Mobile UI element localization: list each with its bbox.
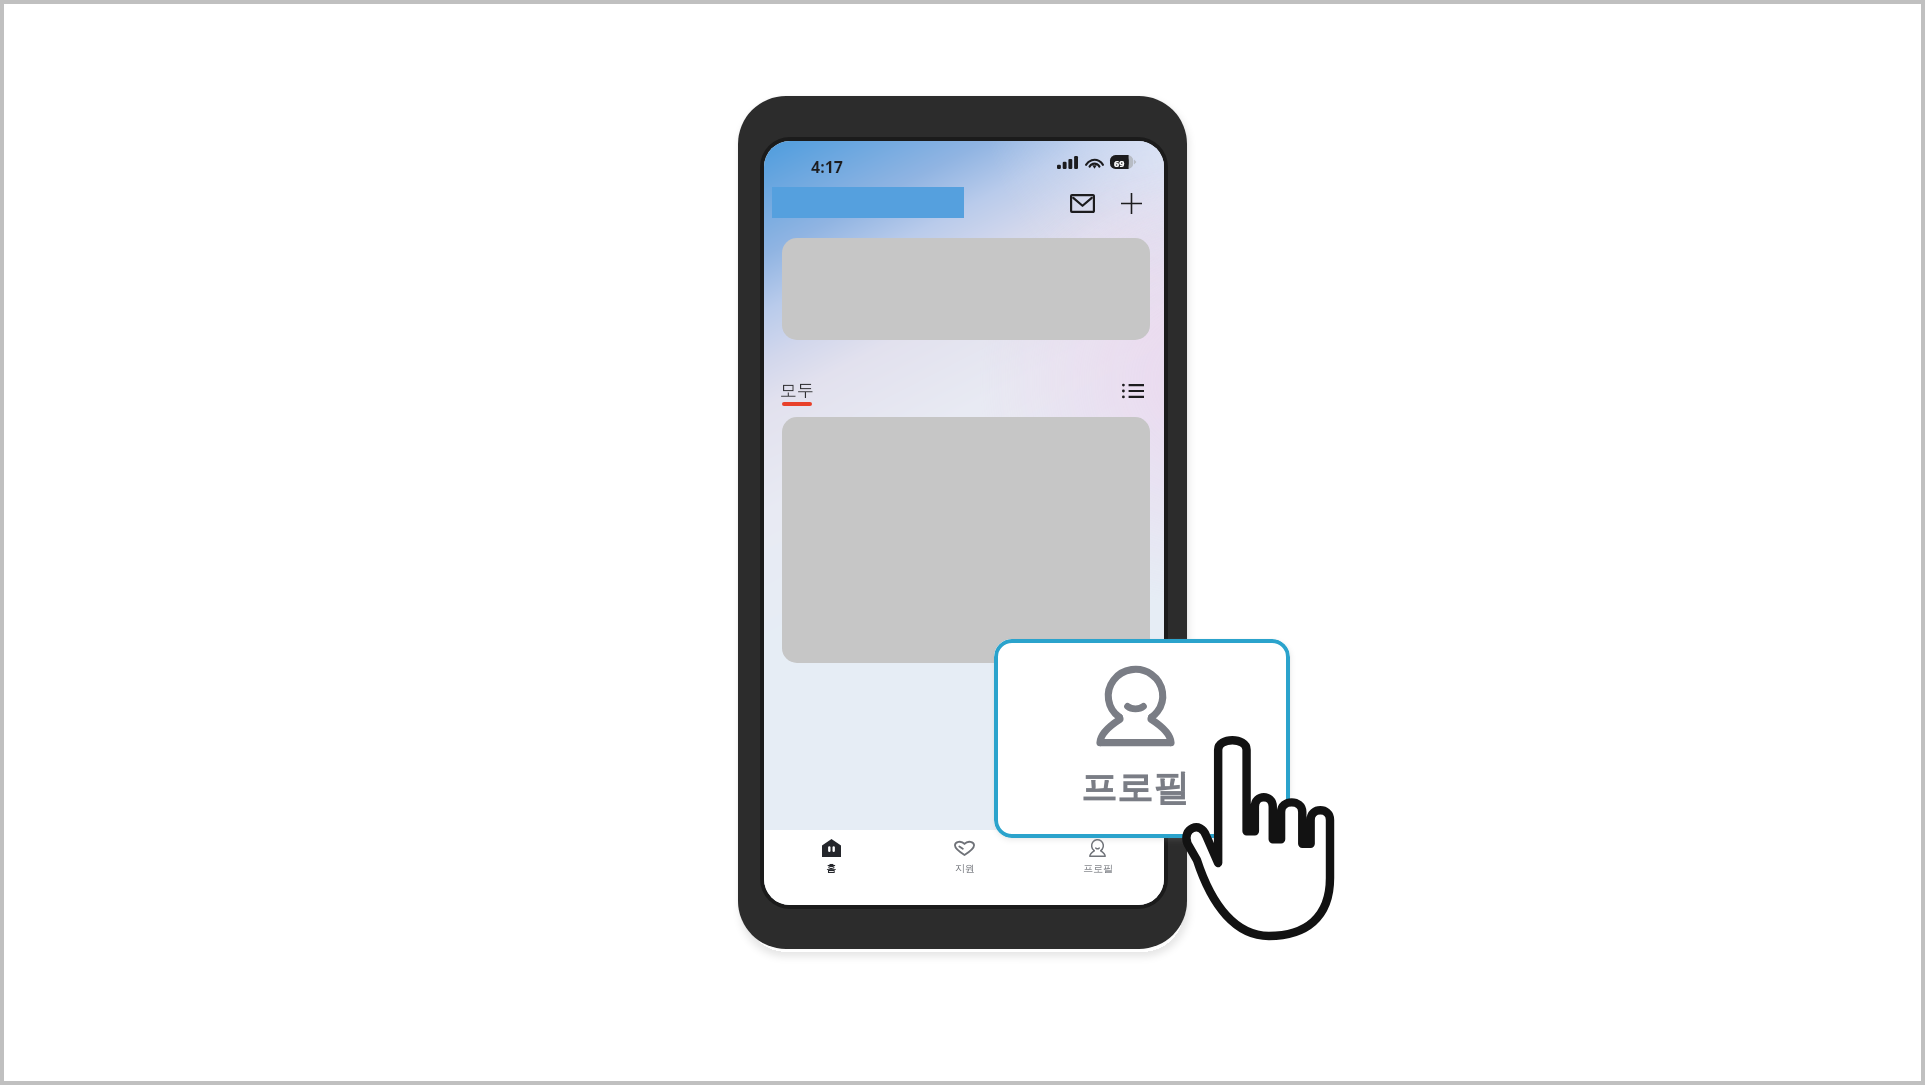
staticText: 프로필 xyxy=(1081,765,1189,810)
button[interactable]: List view xyxy=(1112,370,1154,412)
staticText: 지원 xyxy=(955,862,975,875)
staticText: 홈 xyxy=(826,862,836,875)
button[interactable]: 프로필 xyxy=(994,639,1290,838)
other: Tap xyxy=(1180,738,1336,941)
button[interactable]: 모두 xyxy=(780,380,814,406)
button[interactable]: Add xyxy=(1109,181,1153,225)
button[interactable]: 프로필 xyxy=(1031,830,1164,875)
button[interactable] xyxy=(782,417,1150,663)
staticText: 모두 xyxy=(780,380,814,401)
button[interactable]: Messages xyxy=(1060,181,1104,225)
staticText: 4:17 xyxy=(811,156,843,178)
staticText: 69 xyxy=(1114,157,1125,169)
button[interactable]: 홈 xyxy=(764,830,898,875)
staticText: 프로필 xyxy=(1083,862,1113,875)
button[interactable]: 지원 xyxy=(898,830,1031,875)
